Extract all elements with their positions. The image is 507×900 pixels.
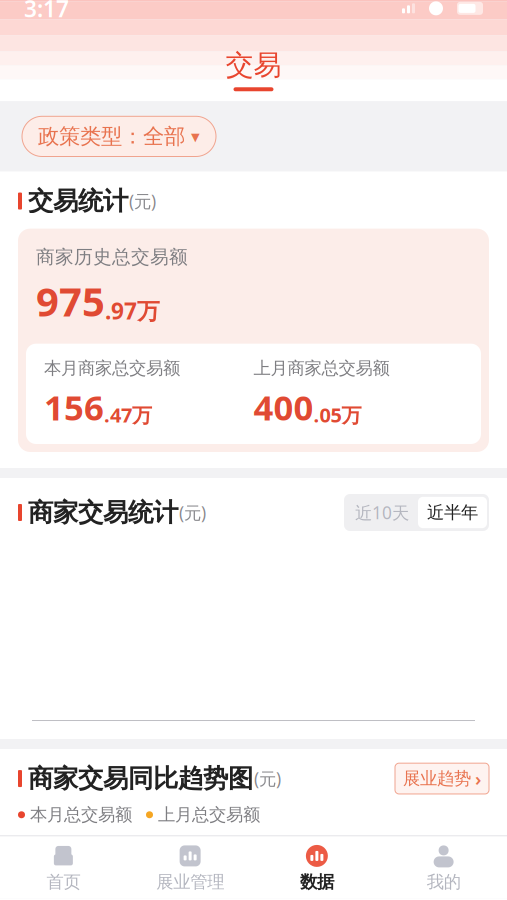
staticText: .47万 — [104, 401, 152, 428]
staticText: (元) — [254, 767, 281, 790]
staticText: 上月商家总交易额 — [253, 358, 389, 379]
button[interactable]: 政策类型：全部 — [22, 116, 216, 156]
button[interactable]: 近半年 — [418, 497, 487, 528]
staticText: 政策类型：全部 — [38, 123, 185, 149]
button[interactable]: 展业趋势 — [395, 763, 489, 794]
staticText: 近10天 — [355, 501, 409, 524]
staticText: .97万 — [105, 296, 160, 326]
staticText: 数据 — [300, 871, 334, 893]
staticText: 3:17 — [24, 0, 69, 23]
staticText: 商家交易统计 — [28, 497, 178, 528]
staticText: 975 — [36, 274, 105, 328]
staticText: 商家交易同比趋势图 — [28, 763, 253, 794]
staticText: 展业管理 — [156, 871, 224, 893]
staticText: (元) — [129, 189, 156, 212]
staticText: 交易 — [225, 48, 281, 82]
button[interactable]: 展业管理 — [127, 836, 254, 899]
staticText: 上月总交易额 — [158, 804, 260, 825]
staticText: › — [475, 766, 481, 791]
staticText: 156 — [44, 384, 104, 430]
staticText: 本月总交易额 — [30, 804, 132, 825]
button[interactable]: 近10天 — [346, 496, 418, 529]
staticText: 交易统计 — [28, 185, 128, 217]
button[interactable]: 数据 — [253, 836, 380, 899]
button[interactable]: 首页 — [0, 836, 127, 899]
button[interactable]: 我的 — [380, 836, 507, 899]
staticText: 首页 — [46, 871, 80, 893]
staticText: 我的 — [427, 871, 461, 893]
staticText: 本月商家总交易额 — [44, 358, 180, 379]
staticText: (元) — [179, 501, 206, 524]
staticText: 近半年 — [427, 502, 478, 523]
staticText: .05万 — [313, 401, 361, 428]
staticText: 400 — [253, 384, 313, 430]
staticText: 商家历史总交易额 — [36, 246, 188, 268]
staticText: 展业趋势 — [403, 768, 471, 789]
staticText: ▾ — [191, 127, 200, 146]
